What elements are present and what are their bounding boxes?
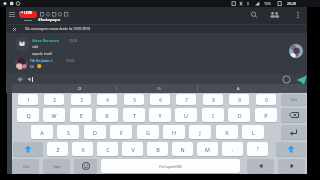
button[interactable] (250, 11, 259, 19)
button[interactable] (6, 25, 307, 33)
staticText: S (67, 129, 70, 136)
staticText: Oi (30, 64, 34, 69)
button[interactable]: 7 (176, 94, 196, 105)
staticText: Oi (157, 86, 162, 91)
button[interactable]: H (163, 125, 185, 139)
button[interactable] (296, 75, 308, 85)
staticText: Edson Baroneza (32, 38, 59, 43)
button[interactable] (281, 125, 306, 139)
button[interactable]: A (31, 125, 53, 139)
button[interactable]: Português(BR) (101, 159, 240, 173)
staticText: 15% (264, 1, 271, 6)
button[interactable]: G (137, 125, 159, 139)
staticText: 20:28 (69, 39, 77, 43)
button[interactable]: E (70, 108, 92, 122)
button[interactable]: LIVE (19, 11, 37, 18)
button[interactable]: 1 (18, 94, 38, 105)
button[interactable]: J (189, 125, 211, 139)
button[interactable] (278, 159, 305, 173)
button[interactable]: U (175, 108, 197, 122)
button[interactable]: I (202, 108, 224, 122)
staticText: ? (256, 146, 259, 153)
staticText: W (51, 112, 57, 119)
staticText: 4 (106, 97, 109, 103)
staticText: B (156, 146, 160, 153)
button[interactable]: Y (149, 108, 171, 122)
button[interactable]: K (216, 125, 238, 139)
staticText: 20:28 (66, 59, 74, 63)
staticText: F (120, 129, 123, 136)
button[interactable]: F (110, 125, 132, 139)
button[interactable]: Ctrl (12, 159, 39, 173)
button[interactable]: Sym (43, 159, 70, 173)
button[interactable]: 3 (71, 94, 91, 105)
button[interactable]: 2 (44, 94, 64, 105)
button[interactable]: ? (247, 142, 268, 156)
button[interactable]: T (123, 108, 145, 122)
button[interactable]: C (97, 142, 118, 156)
button[interactable]: 0 (256, 94, 276, 105)
staticText: K (225, 129, 229, 136)
staticText: Ctrl (23, 164, 29, 169)
staticText: 0 (265, 97, 268, 103)
button[interactable] (8, 11, 16, 18)
button[interactable] (289, 44, 303, 58)
button[interactable] (276, 142, 306, 156)
button[interactable] (269, 11, 281, 19)
staticText: Y (158, 112, 162, 119)
staticText: q (28, 76, 31, 82)
button[interactable]: P (255, 108, 277, 122)
staticText: #batopapo (38, 17, 61, 23)
button[interactable]: Del (281, 94, 306, 105)
button[interactable]: 5 (124, 94, 144, 105)
staticText: C (106, 146, 110, 153)
button[interactable] (282, 75, 291, 84)
button[interactable]: L (242, 125, 264, 139)
button[interactable] (13, 142, 43, 156)
staticText: vdd (32, 44, 38, 49)
button[interactable]: 6 (150, 94, 170, 105)
button[interactable] (15, 37, 29, 51)
staticText: 3 (80, 97, 83, 103)
staticText: 50+ mensagens novas desde às 15/01/2018 (25, 27, 91, 31)
staticText: M (205, 146, 210, 153)
staticText: O (237, 112, 242, 119)
button[interactable]: N (172, 142, 193, 156)
button[interactable] (15, 57, 28, 70)
button[interactable] (281, 108, 306, 122)
staticText: I (212, 112, 214, 119)
button[interactable]: R (96, 108, 118, 122)
staticText: 1 (27, 97, 30, 103)
staticText: 6 (159, 97, 162, 103)
button[interactable]: 9 (229, 94, 249, 105)
button[interactable]: O (228, 108, 250, 122)
staticText: Sym (53, 164, 61, 169)
button[interactable]: Z (47, 142, 68, 156)
button[interactable]: Q (17, 108, 39, 122)
staticText: N (180, 146, 185, 153)
button[interactable]: B (147, 142, 168, 156)
button[interactable] (74, 159, 97, 173)
staticText: E (80, 112, 83, 119)
button[interactable]: 4 (97, 94, 117, 105)
button[interactable]: W (43, 108, 65, 122)
button[interactable]: S (57, 125, 79, 139)
staticText: LIVE (24, 11, 33, 15)
button[interactable]: V (122, 142, 143, 156)
staticText: 9 (238, 97, 241, 103)
staticText: J (199, 129, 201, 136)
button[interactable] (247, 159, 274, 173)
staticText: G (146, 129, 150, 136)
staticText: Português(BR) (159, 164, 182, 169)
button[interactable]: , (222, 142, 243, 156)
button[interactable] (17, 77, 24, 82)
button[interactable]: D (84, 125, 106, 139)
button[interactable]: X (72, 142, 93, 156)
staticText: U (184, 112, 188, 119)
button[interactable]: M (197, 142, 218, 156)
staticText: H (172, 129, 176, 136)
button[interactable] (295, 11, 301, 19)
staticText: 5 (133, 97, 136, 103)
staticText: R (105, 112, 109, 119)
button[interactable]: 8 (203, 94, 223, 105)
